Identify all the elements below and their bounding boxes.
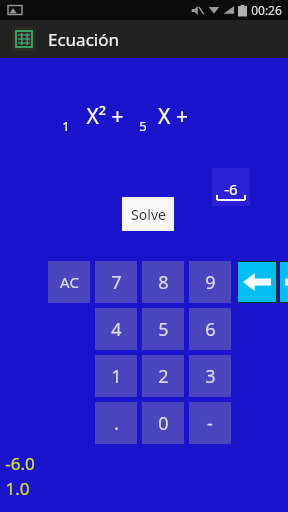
staticText: 1 [62,117,70,135]
button[interactable]: 3 [189,355,231,397]
button[interactable]: Previous [238,262,276,302]
button[interactable]: 9 [189,261,231,303]
staticText: 6 [205,317,216,342]
staticText: 00:26 [251,2,282,18]
staticText: Solve [131,205,166,224]
staticText: 9 [205,270,216,295]
staticText: 7 [111,270,122,295]
staticText: 8 [158,270,169,295]
button[interactable]: Solve [122,197,174,231]
button[interactable]: 7 [95,261,137,303]
button[interactable]: 1 [95,355,137,397]
staticText: 5 [158,317,169,342]
button[interactable]: 5 [142,308,184,350]
button[interactable]: . [95,402,137,444]
staticText: Ecuación [48,28,119,51]
staticText: . [114,411,119,436]
staticText: 5 [139,117,147,135]
staticText: 0 [158,411,169,436]
staticText: 1 [111,364,122,389]
staticText: - [207,411,213,436]
staticText: 3 [205,364,216,389]
button[interactable]: 6 [189,308,231,350]
button[interactable]: 4 [95,308,137,350]
button[interactable]: 8 [142,261,184,303]
staticText: 1.0 [5,477,30,500]
staticText: 4 [111,317,122,342]
button[interactable]: 2 [142,355,184,397]
staticText: X² + [86,102,124,131]
staticText: AC [60,272,79,292]
staticText: X + [158,102,188,131]
button[interactable]: -6 [212,168,250,206]
staticText: -6.0 [5,452,35,475]
button[interactable]: - [189,402,231,444]
button[interactable]: Next [280,262,288,302]
staticText: -6 [224,179,238,199]
button[interactable]: AC [48,261,90,303]
button[interactable]: 0 [142,402,184,444]
staticText: 2 [158,364,169,389]
